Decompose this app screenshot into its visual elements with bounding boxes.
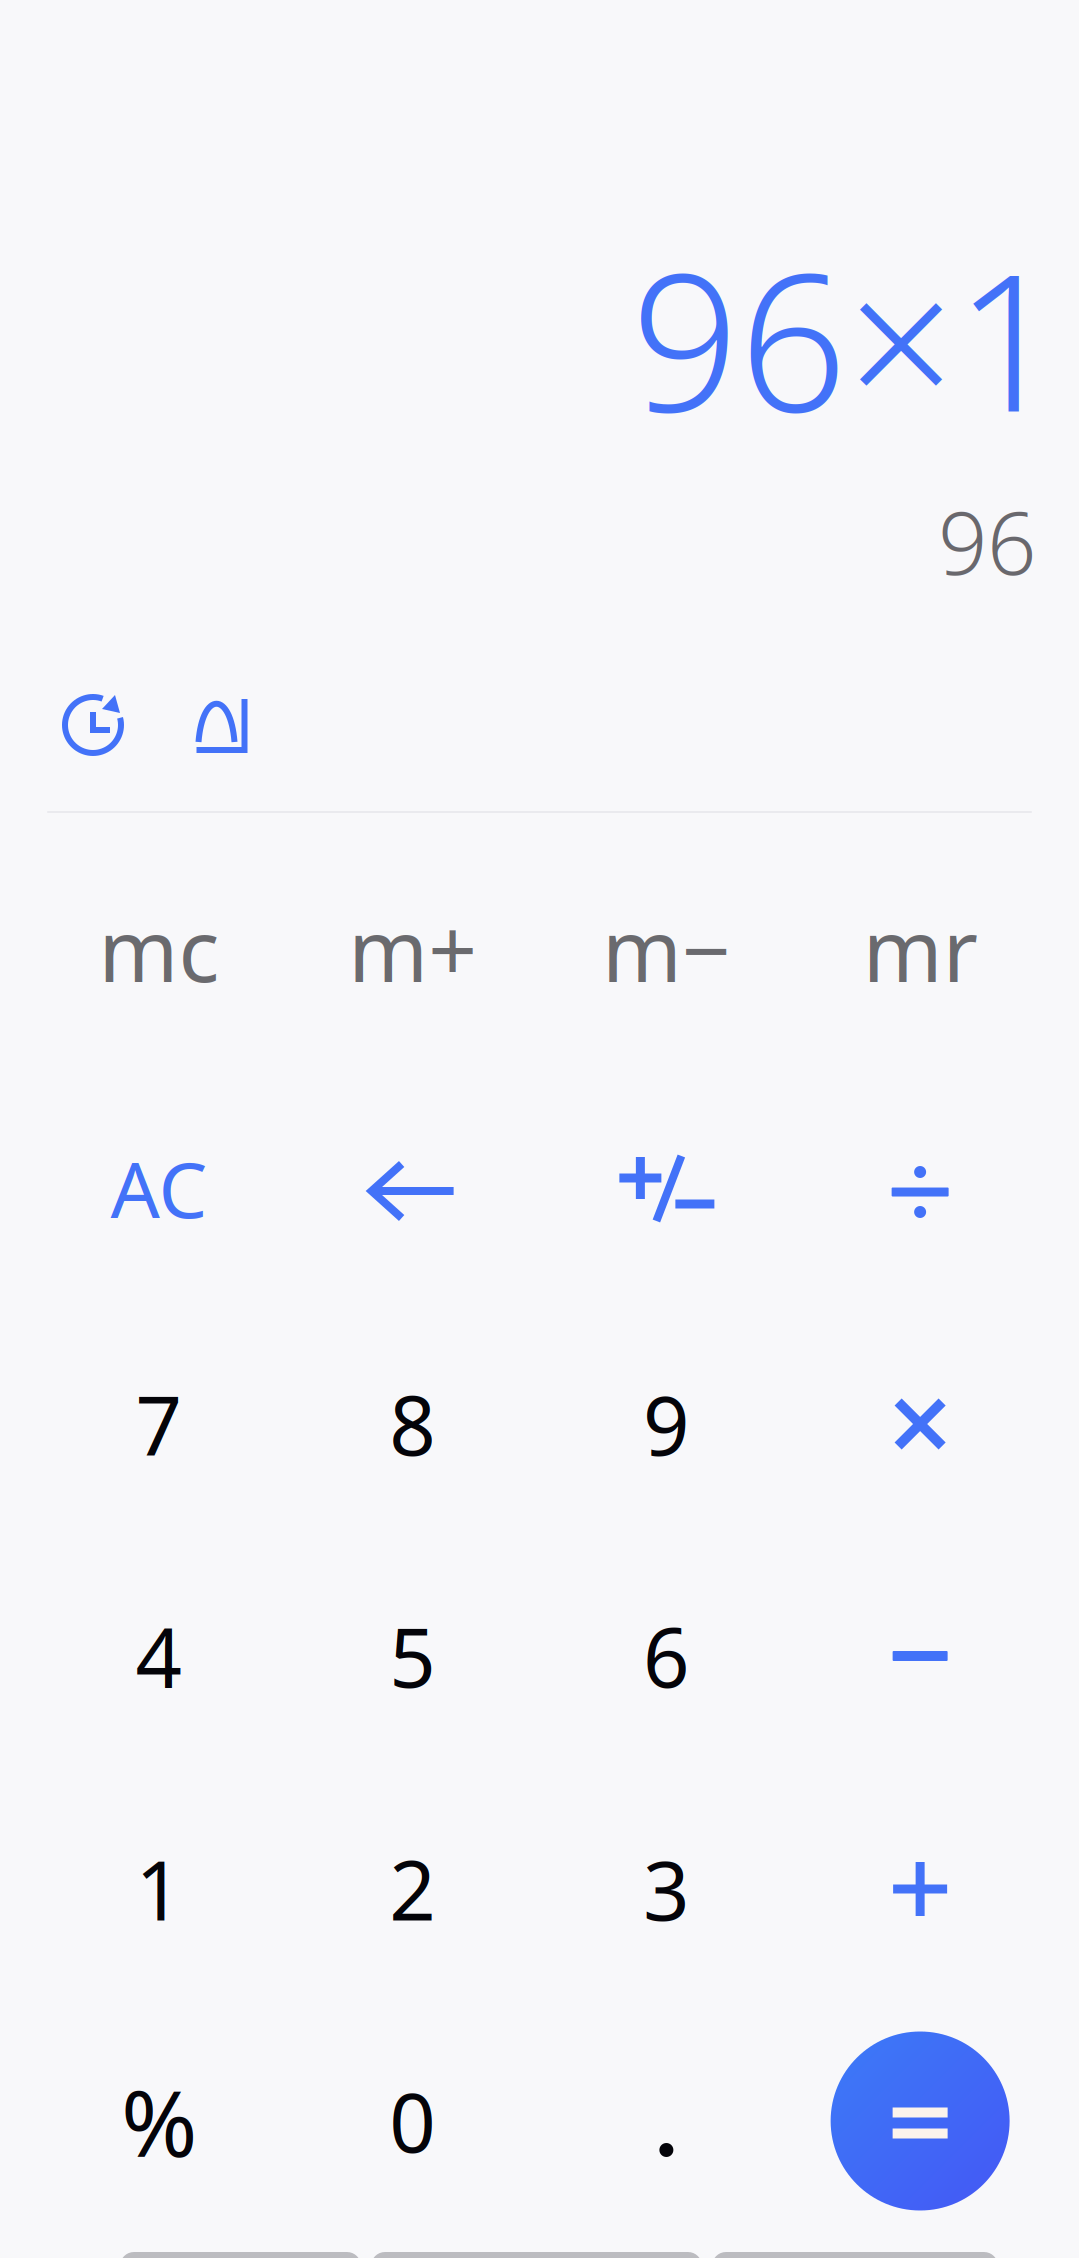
staticText: 4 bbox=[135, 1602, 182, 1710]
staticText: 9 bbox=[643, 1370, 690, 1478]
button[interactable]: 5 bbox=[286, 1551, 540, 1761]
staticText: 96×1 bbox=[631, 212, 1063, 464]
staticText: 8 bbox=[389, 1370, 436, 1478]
button[interactable]: m− bbox=[539, 844, 793, 1054]
staticText: 6 bbox=[643, 1602, 690, 1710]
button[interactable]: 2 bbox=[286, 1784, 540, 1994]
button[interactable]: 6 bbox=[539, 1551, 793, 1761]
staticText: 1 bbox=[135, 1835, 182, 1943]
button[interactable]: 8 bbox=[286, 1319, 540, 1529]
staticText: m− bbox=[602, 892, 731, 1006]
staticText: 3 bbox=[643, 1835, 690, 1943]
button[interactable]: m+ bbox=[286, 844, 540, 1054]
button[interactable]: 1 bbox=[32, 1784, 286, 1994]
staticText: % bbox=[121, 2060, 197, 2182]
staticText: 2 bbox=[389, 1835, 436, 1943]
button[interactable]: Multiply bbox=[793, 1319, 1047, 1529]
button[interactable]: Equals bbox=[793, 2016, 1047, 2226]
staticText: 0 bbox=[389, 2067, 436, 2175]
button[interactable]: 0 bbox=[286, 2016, 540, 2226]
button[interactable]: AC bbox=[32, 1083, 286, 1293]
button[interactable]: mc bbox=[32, 844, 286, 1054]
staticText: mc bbox=[98, 892, 219, 1006]
button[interactable]: Divide bbox=[793, 1083, 1047, 1293]
button[interactable]: Toggle sign bbox=[539, 1083, 793, 1293]
button[interactable]: Decimal point bbox=[539, 2016, 793, 2226]
button[interactable]: mr bbox=[793, 844, 1047, 1054]
staticText: 5 bbox=[389, 1602, 436, 1710]
button[interactable]: 9 bbox=[539, 1319, 793, 1529]
staticText: mr bbox=[863, 892, 978, 1006]
staticText: AC bbox=[110, 1137, 207, 1239]
button[interactable]: Backspace bbox=[286, 1083, 540, 1293]
button[interactable]: Subtract bbox=[793, 1551, 1047, 1761]
staticText: m+ bbox=[348, 892, 477, 1006]
button[interactable]: Graph bbox=[171, 675, 271, 775]
button[interactable]: Add bbox=[793, 1784, 1047, 1994]
button[interactable]: % bbox=[32, 2016, 286, 2226]
button[interactable]: History bbox=[43, 675, 143, 775]
button[interactable]: 4 bbox=[32, 1551, 286, 1761]
button[interactable]: 3 bbox=[539, 1784, 793, 1994]
staticText: 96 bbox=[938, 483, 1036, 599]
button[interactable]: 7 bbox=[32, 1319, 286, 1529]
staticText: 7 bbox=[135, 1370, 182, 1478]
